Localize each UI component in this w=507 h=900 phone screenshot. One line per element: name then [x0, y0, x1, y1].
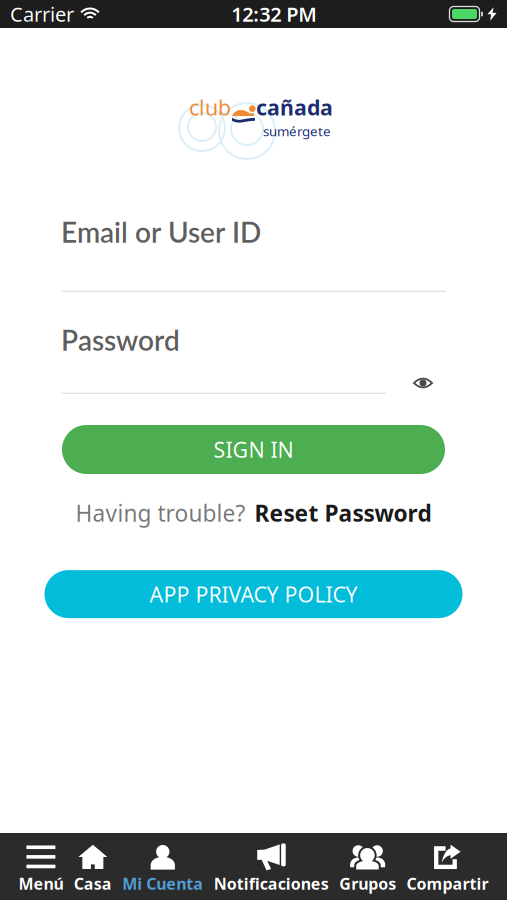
staticText: Having trouble? — [75, 498, 245, 528]
staticText: Email or User ID — [61, 215, 261, 249]
staticText: SIGN IN — [213, 435, 293, 464]
staticText: Compartir — [407, 873, 489, 894]
button[interactable]: SIGN IN — [62, 425, 445, 474]
button[interactable]: Grupos — [339, 830, 396, 900]
staticText: Carrier — [10, 1, 74, 27]
staticText: Grupos — [339, 873, 396, 894]
button[interactable]: Compartir — [407, 830, 489, 900]
staticText: cañada — [256, 93, 333, 121]
button[interactable]: Casa — [74, 830, 112, 900]
button[interactable]: Mi Cuenta — [122, 830, 203, 900]
staticText: Reset Password — [254, 498, 431, 528]
button[interactable]: APP PRIVACY POLICY — [44, 570, 462, 618]
button[interactable]: Reset Password — [254, 498, 431, 528]
staticText: 12:32 PM — [231, 1, 317, 27]
staticText: sumérgete — [263, 122, 331, 140]
button[interactable]: Show password — [400, 371, 446, 395]
button[interactable]: Notificaciones — [214, 830, 329, 900]
staticText: Notificaciones — [214, 873, 329, 894]
staticText: Menú — [18, 873, 63, 894]
staticText: Mi Cuenta — [122, 873, 203, 894]
staticText: Casa — [74, 873, 112, 894]
button[interactable]: Menú — [18, 830, 63, 900]
staticText: APP PRIVACY POLICY — [149, 580, 357, 608]
staticText: club — [189, 93, 231, 121]
staticText: Password — [61, 323, 180, 357]
